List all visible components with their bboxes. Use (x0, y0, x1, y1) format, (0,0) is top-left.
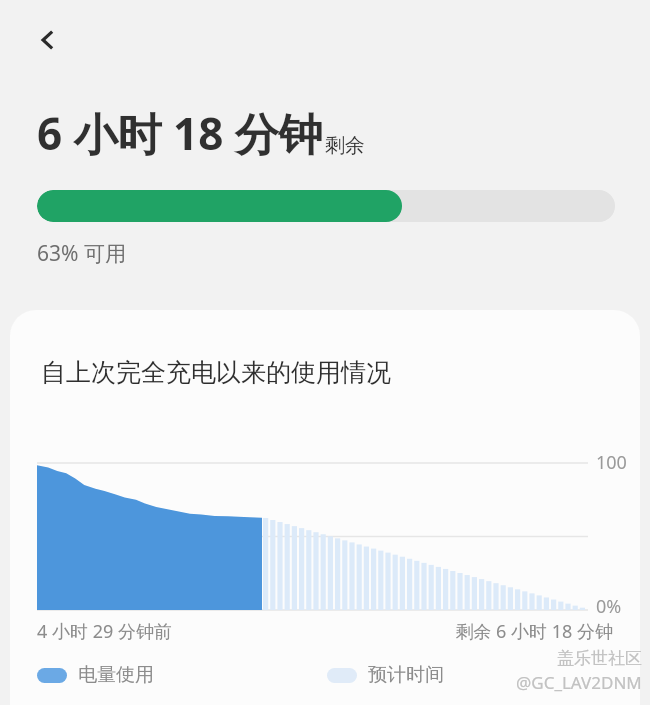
staticText: 0% (596, 594, 622, 619)
staticText: 4 小时 29 分钟前 (37, 619, 172, 644)
staticText: 盖乐世社区 (557, 648, 642, 669)
staticText: 6 小时 18 分钟 (37, 103, 323, 163)
staticText: 剩余 6 小时 18 分钟 (0, 619, 613, 644)
staticText: 剩余 (325, 133, 365, 158)
button[interactable]: 预计时间 (327, 663, 444, 687)
staticText: @GC_LAV2DNM (516, 671, 642, 694)
staticText: 预计时间 (368, 663, 444, 687)
staticText: 电量使用 (78, 663, 154, 687)
staticText: 63% 可用 (37, 239, 126, 268)
button[interactable]: Back (20, 12, 76, 68)
button[interactable]: 电量使用 (37, 663, 154, 687)
staticText: 100 (596, 450, 627, 475)
staticText: 自上次完全充电以来的使用情况 (41, 357, 391, 388)
